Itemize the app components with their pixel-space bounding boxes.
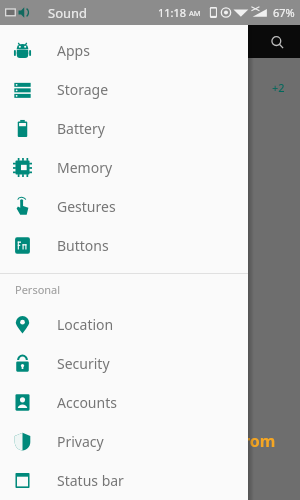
staticText: Gestures [57, 197, 116, 216]
staticText: Privacy [57, 432, 104, 451]
staticText: +2 [272, 80, 285, 95]
button[interactable]: Accounts [0, 383, 248, 422]
staticText: Personal [15, 282, 61, 297]
button[interactable]: Storage [0, 70, 248, 109]
button[interactable]: Battery [0, 109, 248, 148]
staticText: rom [243, 430, 276, 452]
staticText: 11:18 [158, 5, 187, 20]
button[interactable]: Status bar [0, 461, 248, 500]
staticText: 67% [273, 5, 295, 20]
button[interactable]: Search [264, 29, 290, 55]
staticText: Buttons [57, 236, 109, 255]
staticText: Accounts [57, 393, 117, 412]
staticText: Location [57, 315, 114, 334]
staticText: Battery [57, 119, 105, 138]
staticText: Security [57, 354, 110, 373]
staticText: AM [189, 8, 201, 18]
staticText: Memory [57, 158, 113, 177]
staticText: Status bar [57, 471, 124, 490]
button[interactable]: Buttons [0, 226, 248, 265]
staticText: Storage [57, 80, 109, 99]
button[interactable]: Memory [0, 148, 248, 187]
button[interactable]: Privacy [0, 422, 248, 461]
staticText: Apps [57, 41, 90, 60]
button[interactable]: Gestures [0, 187, 248, 226]
button[interactable]: Apps [0, 31, 248, 70]
staticText: Sound [48, 4, 88, 22]
button[interactable]: Location [0, 305, 248, 344]
button[interactable]: Security [0, 344, 248, 383]
